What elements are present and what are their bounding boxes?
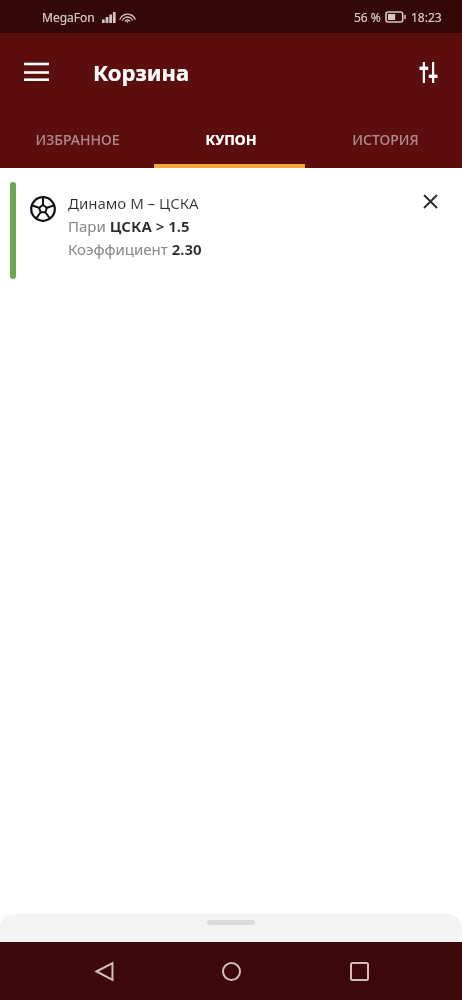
staticText: Коэффициент 2.30: [68, 239, 202, 259]
button[interactable]: Back: [80, 947, 128, 995]
button[interactable]: [0, 914, 462, 942]
button[interactable]: Filter settings: [404, 48, 452, 96]
button[interactable]: Menu: [12, 48, 60, 96]
staticText: Динамо М – ЦСКА: [68, 193, 199, 213]
staticText: 18:23: [411, 9, 442, 25]
button[interactable]: Home: [207, 947, 255, 995]
staticText: КУПОН: [205, 130, 257, 149]
staticText: ИЗБРАННОЕ: [35, 130, 120, 149]
button[interactable]: ИЗБРАННОЕ: [0, 110, 154, 168]
button[interactable]: Remove bet: [408, 179, 452, 223]
staticText: Пари ЦСКА > 1.5: [68, 216, 190, 236]
button[interactable]: КУПОН: [154, 110, 308, 168]
button[interactable]: Recent apps: [335, 947, 383, 995]
staticText: ИСТОРИЯ: [352, 130, 419, 149]
button[interactable]: ИСТОРИЯ: [308, 110, 462, 168]
button[interactable]: [10, 179, 452, 282]
staticText: 56 %: [354, 9, 381, 25]
staticText: Корзина: [93, 57, 190, 87]
staticText: MegaFon: [42, 9, 95, 25]
